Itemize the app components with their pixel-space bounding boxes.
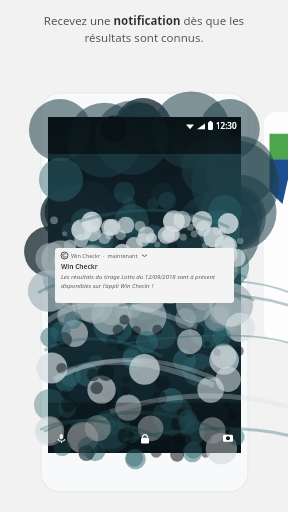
- staticText: Recevez une notification dès que les rés…: [18, 13, 270, 46]
- button[interactable]: Appareil photo: [220, 430, 236, 446]
- staticText: Win Checkr · maintenant: [71, 252, 138, 259]
- staticText: Les résultats du tirage Lotto du 12/09/2…: [61, 273, 228, 289]
- button[interactable]: Assistant vocal: [53, 430, 69, 446]
- staticText: 12:30: [216, 120, 237, 131]
- staticText: Win Checkr: [61, 262, 98, 271]
- button[interactable]: Verrouillé: [137, 431, 153, 447]
- button[interactable]: Win Checkr · maintenant: [55, 248, 234, 303]
